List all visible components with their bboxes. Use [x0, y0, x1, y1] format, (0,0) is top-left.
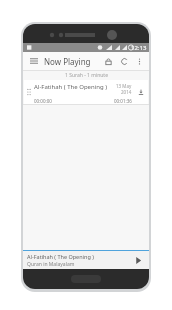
staticText: Al-Fatihah ( The Opening ) — [27, 253, 94, 260]
button[interactable]: Open navigation drawer — [27, 54, 41, 68]
staticText: 13 May — [116, 83, 132, 89]
button[interactable]: More options — [133, 55, 145, 67]
other: Reorder — [24, 80, 34, 104]
staticText: Now Playing — [44, 56, 101, 67]
button[interactable]: Refresh — [117, 54, 131, 68]
staticText: Al-Fatihah ( The Opening ) — [34, 83, 116, 91]
button[interactable]: Al-Fatihah ( The Opening ) — [23, 251, 149, 269]
button[interactable]: Download — [134, 80, 148, 104]
staticText: 00:00:00 — [34, 98, 52, 104]
button[interactable]: Reorder — [24, 80, 148, 104]
staticText: Quran in Malayalam — [27, 261, 75, 268]
button[interactable]: Lock — [101, 54, 115, 68]
staticText: 2014 — [121, 89, 132, 95]
staticText: 1 Surah - 1 minute — [65, 72, 108, 79]
staticText: 00:01:36 — [114, 98, 132, 104]
button[interactable]: Play — [131, 253, 145, 267]
staticText: 12:13 — [131, 44, 147, 52]
